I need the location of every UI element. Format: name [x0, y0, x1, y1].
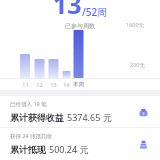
- staticText: 已经借入 19 笔: [10, 100, 47, 108]
- button[interactable]: 收益详情: [136, 105, 150, 119]
- staticText: 12: [36, 81, 43, 88]
- staticText: 累计获得收益: [10, 112, 64, 123]
- staticText: 已参与周数: [65, 22, 95, 30]
- button[interactable]: 已经借入 19 笔: [0, 96, 160, 127]
- button[interactable]: 获得 24 张抵扣金: [0, 128, 160, 159]
- staticText: 1600元: [126, 21, 145, 29]
- staticText: 14: [63, 81, 70, 88]
- staticText: 11: [22, 81, 29, 88]
- staticText: 13: [50, 81, 57, 88]
- staticText: 5374.65 元: [67, 111, 112, 123]
- staticText: 500.24 元: [49, 143, 89, 155]
- staticText: 累计抵现: [10, 144, 46, 155]
- staticText: /52周: [82, 5, 108, 19]
- staticText: 200元: [130, 61, 145, 69]
- staticText: 获得 24 张抵扣金: [10, 132, 53, 140]
- button[interactable]: 抵现详情: [136, 137, 150, 151]
- staticText: 本周: [73, 81, 84, 88]
- staticText: 13: [53, 0, 82, 21]
